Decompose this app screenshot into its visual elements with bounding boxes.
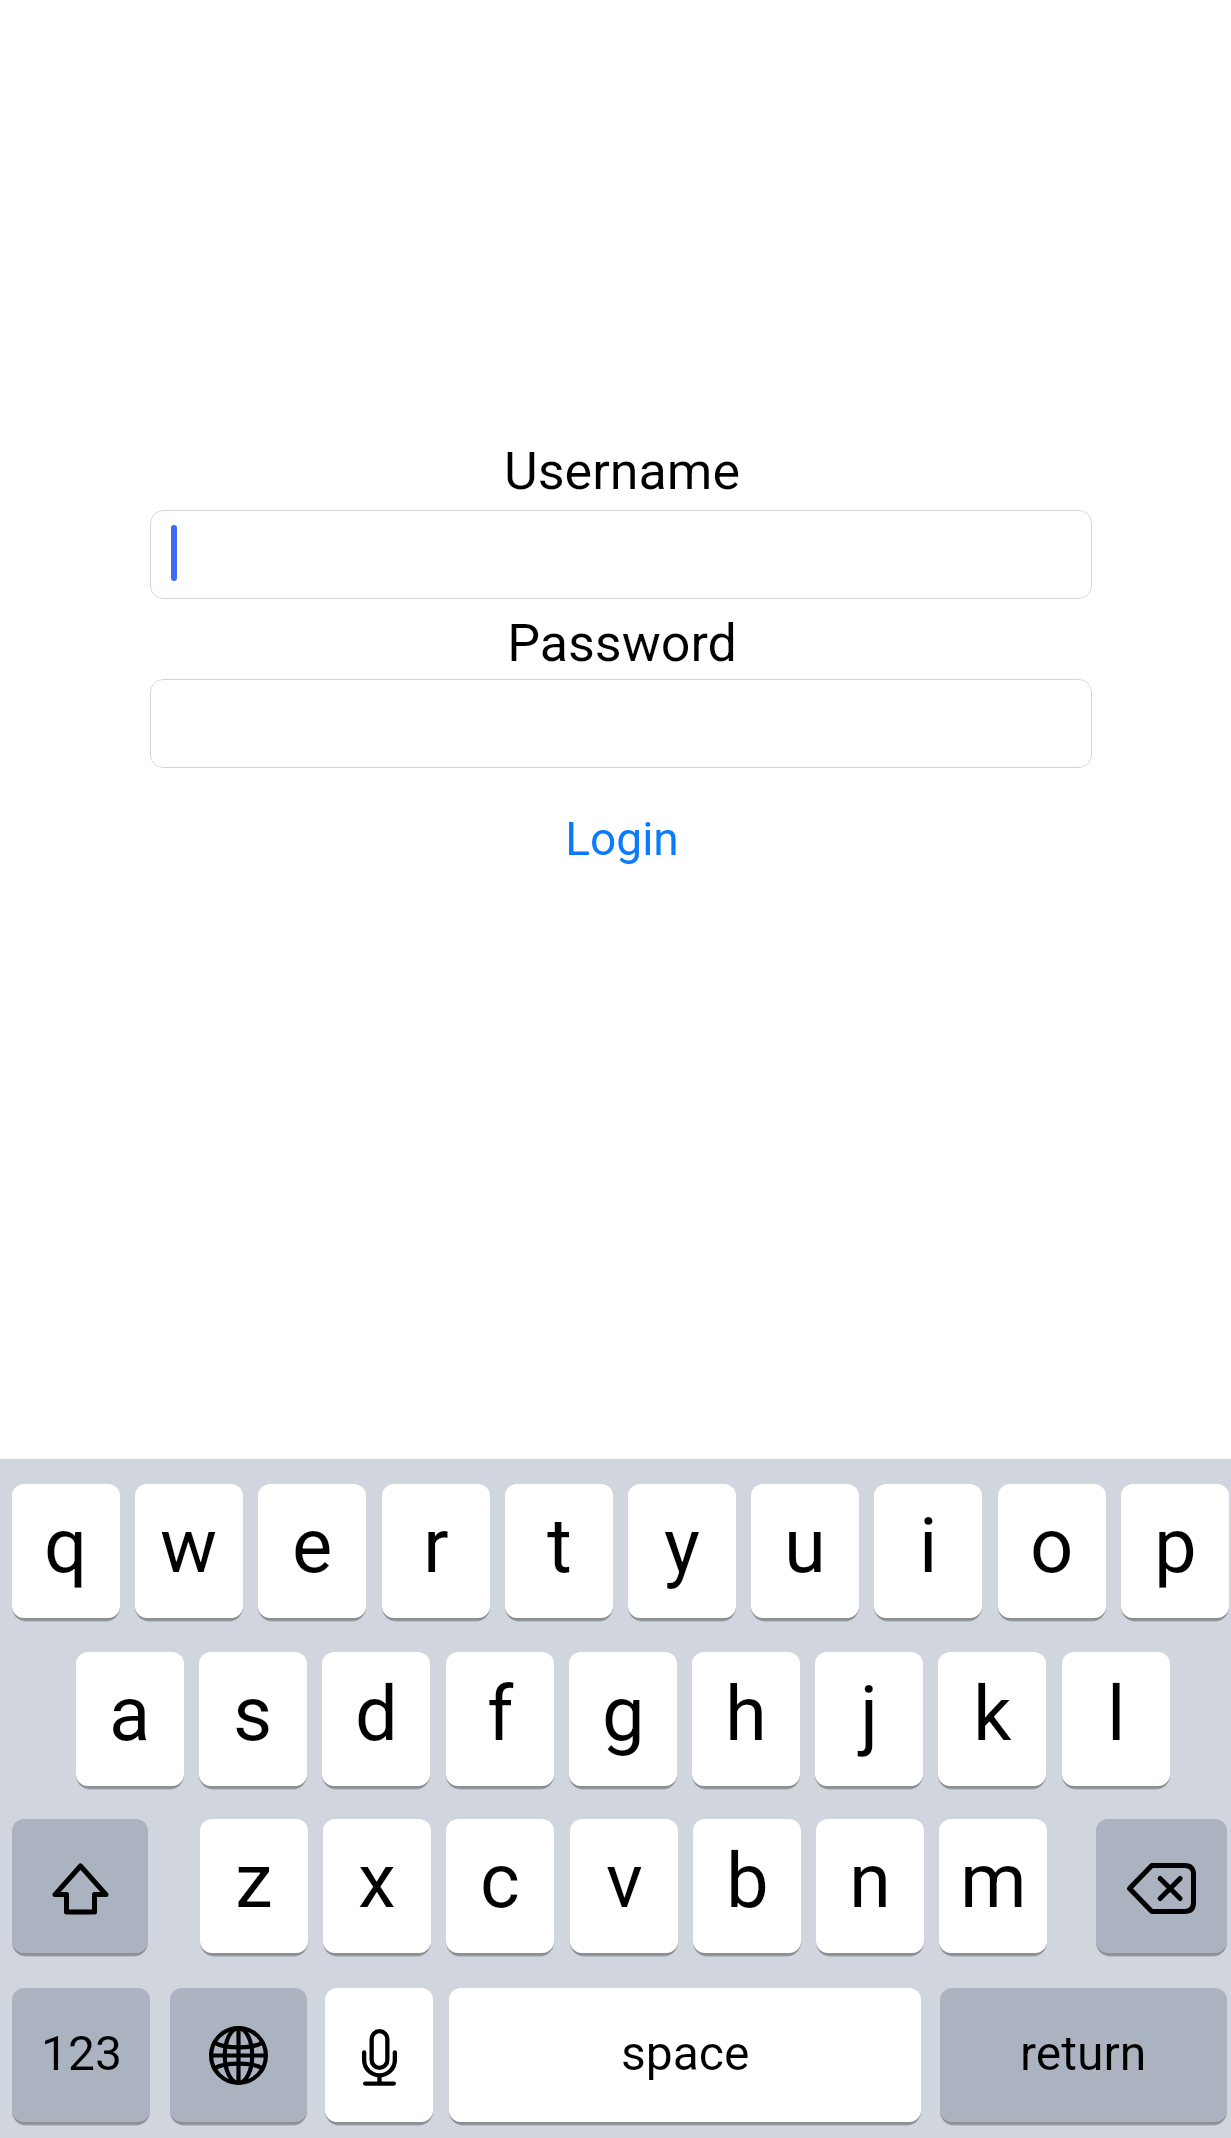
button[interactable]: t	[505, 1484, 613, 1618]
staticText: a	[109, 1669, 151, 1758]
button[interactable]: l	[1062, 1652, 1170, 1786]
staticText: t	[547, 1501, 572, 1590]
staticText: c	[480, 1836, 520, 1925]
staticText: b	[726, 1836, 769, 1925]
staticText: Password	[507, 613, 737, 674]
staticText: i	[919, 1501, 938, 1590]
button[interactable]: Next keyboard	[170, 1988, 307, 2122]
button[interactable]: z	[200, 1819, 308, 1953]
button[interactable]: e	[258, 1484, 366, 1618]
button[interactable]: f	[446, 1652, 554, 1786]
button[interactable]	[150, 510, 1092, 599]
staticText: u	[784, 1501, 826, 1590]
button[interactable]: i	[874, 1484, 982, 1618]
staticText: k	[973, 1669, 1012, 1758]
staticText: m	[960, 1836, 1027, 1925]
staticText: space	[621, 2025, 750, 2081]
button[interactable]: o	[998, 1484, 1106, 1618]
staticText: p	[1154, 1501, 1197, 1590]
staticText: Username	[504, 441, 740, 502]
button[interactable]: Shift	[12, 1819, 148, 1953]
button[interactable]: m	[939, 1819, 1047, 1953]
staticText: x	[358, 1836, 396, 1925]
staticText: Login	[565, 812, 679, 866]
button[interactable]: y	[628, 1484, 736, 1618]
button[interactable]: g	[569, 1652, 677, 1786]
button[interactable]: j	[815, 1652, 923, 1786]
button[interactable]: n	[816, 1819, 924, 1953]
button[interactable]: b	[693, 1819, 801, 1953]
button[interactable]: s	[199, 1652, 307, 1786]
button[interactable]: r	[382, 1484, 490, 1618]
staticText: l	[1107, 1669, 1126, 1758]
button[interactable]: Dictation	[325, 1988, 433, 2122]
staticText: s	[233, 1669, 273, 1758]
button[interactable]: k	[938, 1652, 1046, 1786]
button[interactable]: p	[1121, 1484, 1229, 1618]
staticText: w	[160, 1501, 218, 1590]
button[interactable]: u	[751, 1484, 859, 1618]
button[interactable]: d	[322, 1652, 430, 1786]
staticText: r	[423, 1501, 449, 1590]
staticText: h	[725, 1669, 767, 1758]
staticText: o	[1030, 1501, 1074, 1590]
staticText: return	[1020, 2025, 1147, 2081]
button[interactable]: q	[12, 1484, 120, 1618]
button[interactable]: return	[940, 1988, 1227, 2122]
button[interactable]: v	[570, 1819, 678, 1953]
button[interactable]: c	[446, 1819, 554, 1953]
staticText: d	[355, 1669, 398, 1758]
staticText: q	[44, 1501, 88, 1590]
staticText: n	[849, 1836, 891, 1925]
button[interactable]: space	[449, 1988, 921, 2122]
staticText: e	[292, 1501, 333, 1590]
staticText: z	[235, 1836, 273, 1925]
button[interactable]: Login	[6, 812, 1231, 870]
staticText: f	[487, 1669, 514, 1758]
staticText: 123	[41, 2025, 122, 2081]
staticText: j	[860, 1669, 879, 1758]
button[interactable]: Delete	[1096, 1819, 1227, 1953]
button[interactable]: a	[76, 1652, 184, 1786]
button[interactable]: h	[692, 1652, 800, 1786]
button[interactable]	[150, 679, 1092, 768]
button[interactable]: 123	[12, 1988, 150, 2122]
button[interactable]: x	[323, 1819, 431, 1953]
staticText: g	[602, 1669, 645, 1758]
staticText: v	[606, 1836, 643, 1925]
button[interactable]: w	[135, 1484, 243, 1618]
staticText: y	[664, 1501, 700, 1590]
